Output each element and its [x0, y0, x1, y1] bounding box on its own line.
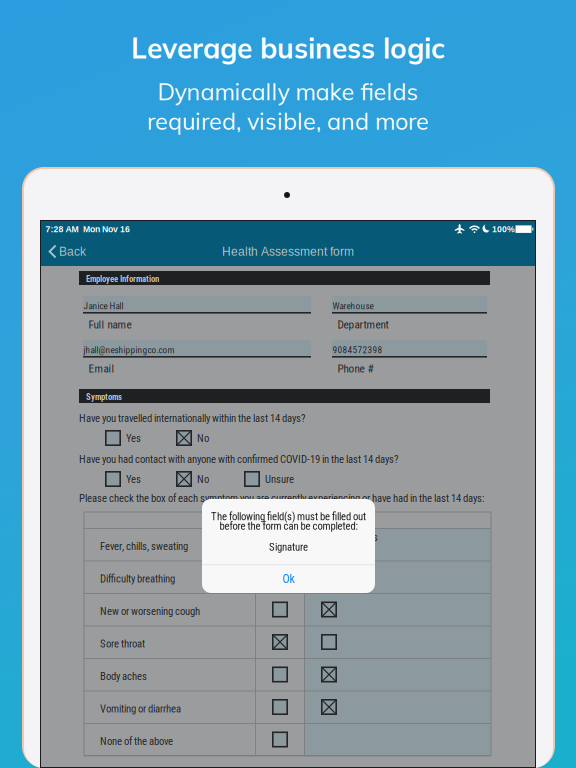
- staticText: Yes: [126, 473, 141, 485]
- staticText: The following field(s) must be filled ou…: [211, 510, 366, 523]
- staticText: required, visible, and more: [147, 106, 429, 136]
- staticText: Fever, chills, sweating: [100, 540, 188, 552]
- staticText: 9084572398: [332, 344, 382, 355]
- staticText: Leverage business logic: [131, 30, 445, 65]
- staticText: 7:28 AM: [45, 224, 78, 234]
- staticText: Vomiting or diarrhea: [100, 702, 181, 715]
- staticText: Please check the box of each symptom you…: [79, 492, 484, 504]
- staticText: Janice Hall: [83, 300, 123, 311]
- staticText: No: [197, 473, 209, 485]
- staticText: Health Assessment form: [222, 245, 354, 258]
- button[interactable]: Back: [41, 237, 94, 266]
- staticText: Signature: [269, 541, 308, 553]
- staticText: No: [197, 432, 209, 444]
- staticText: Yes: [126, 432, 141, 444]
- staticText: New or worsening cough: [100, 605, 200, 617]
- staticText: Employee Information: [86, 274, 159, 284]
- staticText: Full name: [88, 318, 131, 331]
- staticText: Mon Nov 16: [83, 224, 130, 234]
- staticText: Department: [337, 318, 388, 331]
- staticText: Difficulty breathing: [100, 572, 175, 585]
- staticText: Dynamically make fields: [157, 77, 418, 106]
- staticText: Back: [59, 245, 86, 258]
- staticText: Symptoms: [86, 392, 122, 402]
- staticText: jhall@neshippingco.com: [83, 344, 174, 355]
- staticText: Ok: [282, 572, 294, 586]
- staticText: Phone #: [337, 362, 373, 375]
- staticText: None of the above: [100, 735, 173, 747]
- staticText: Have you had contact with anyone with co…: [79, 453, 399, 465]
- staticText: Unsure: [265, 473, 294, 485]
- staticText: Email: [88, 362, 114, 375]
- staticText: Have you travelled internationally withi…: [79, 412, 306, 424]
- staticText: 100%: [492, 224, 515, 234]
- staticText: Warehouse: [332, 300, 373, 311]
- button[interactable]: Ok: [202, 565, 375, 593]
- staticText: Sore throat: [100, 637, 145, 650]
- staticText: Additional details: [309, 531, 378, 543]
- staticText: before the form can be completed:: [219, 520, 357, 532]
- staticText: Body aches: [100, 670, 147, 682]
